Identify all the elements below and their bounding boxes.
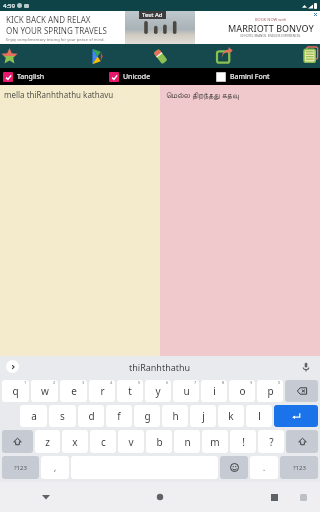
button[interactable]: z	[35, 430, 60, 453]
button[interactable]: n	[174, 430, 200, 453]
staticText: t	[128, 384, 132, 398]
staticText: mella thiRanhthathu kathavu	[4, 89, 114, 100]
button[interactable]: b	[146, 430, 172, 453]
staticText: BOOK NOW with	[255, 17, 287, 22]
button[interactable]: g	[134, 405, 160, 427]
staticText: Tanglish	[17, 72, 45, 82]
button[interactable]: s	[49, 405, 76, 427]
staticText: p	[267, 384, 274, 398]
staticText: ?123	[293, 464, 306, 472]
staticText: d	[88, 409, 95, 423]
button[interactable]: w	[31, 380, 58, 402]
button[interactable]: Clear text	[128, 44, 192, 68]
staticText: 9	[250, 380, 253, 385]
button[interactable]: ?	[258, 430, 284, 453]
button[interactable]: r	[89, 380, 115, 402]
button[interactable]: Advertisement	[0, 11, 320, 44]
button[interactable]: k	[218, 405, 244, 427]
button[interactable]: Comma	[41, 456, 69, 479]
button[interactable]: Open Play Store	[64, 44, 128, 68]
staticText: a	[31, 409, 37, 423]
button[interactable]: o	[229, 380, 255, 402]
staticText: 6	[166, 380, 169, 385]
button[interactable]: Bamini Font	[213, 68, 320, 85]
button[interactable]: Enter	[274, 405, 318, 427]
button[interactable]: i	[201, 380, 227, 402]
staticText: l	[258, 409, 261, 423]
button[interactable]: p	[257, 380, 283, 402]
button[interactable]: Tanglish	[0, 68, 106, 85]
staticText: n	[184, 435, 191, 449]
button[interactable]: Symbols	[2, 456, 39, 479]
staticText: h	[172, 409, 179, 423]
staticText: m	[210, 435, 220, 449]
button[interactable]: u	[173, 380, 199, 402]
staticText: 5	[138, 380, 141, 385]
button[interactable]: q	[2, 380, 29, 402]
staticText: b	[156, 435, 163, 449]
button[interactable]: h	[162, 405, 188, 427]
button[interactable]: Copy	[256, 44, 320, 68]
staticText: Enjoy complimentary testing for your pea…	[6, 37, 105, 42]
button[interactable]: Shift	[286, 430, 318, 453]
button[interactable]: Emoji	[220, 456, 248, 479]
staticText: !	[242, 435, 245, 449]
staticText: 30 HOTEL BRANDS. ENDLESS EXPERIENCES.	[240, 34, 302, 38]
staticText: 4	[110, 380, 113, 385]
staticText: Unicode	[123, 72, 151, 82]
button[interactable]: v	[118, 430, 144, 453]
staticText: u	[183, 384, 190, 398]
button[interactable]: Period	[250, 456, 278, 479]
button[interactable]: Back	[34, 485, 58, 509]
button[interactable]: y	[145, 380, 171, 402]
button[interactable]: Shift	[2, 430, 33, 453]
staticText: g	[144, 409, 151, 423]
staticText: 7	[194, 380, 197, 385]
button[interactable]: l	[246, 405, 272, 427]
staticText: e	[71, 384, 77, 398]
button[interactable]: d	[78, 405, 104, 427]
button[interactable]: Favorite	[0, 44, 64, 68]
button[interactable]: Switch keyboard	[296, 490, 310, 504]
staticText: 3	[82, 380, 85, 385]
staticText: .	[263, 462, 266, 473]
button[interactable]: f	[106, 405, 132, 427]
staticText: ,	[54, 462, 57, 473]
staticText: ?	[269, 435, 274, 449]
staticText: k	[228, 409, 234, 423]
button[interactable]: Voice input	[299, 360, 312, 373]
button[interactable]: c	[90, 430, 116, 453]
staticText: ON YOUR SPRING TRAVELS	[6, 25, 107, 36]
staticText: Test Ad	[142, 11, 163, 19]
staticText: r	[100, 384, 105, 398]
staticText: f	[117, 409, 121, 423]
button[interactable]: t	[117, 380, 143, 402]
button[interactable]: j	[190, 405, 216, 427]
staticText: மெல்ல திறந்தது கதவு	[166, 89, 239, 100]
staticText: Bamini Font	[230, 72, 270, 82]
button[interactable]: Recents	[262, 485, 286, 509]
button[interactable]: e	[60, 380, 87, 402]
button[interactable]: More suggestions	[6, 360, 19, 373]
staticText: y	[155, 384, 161, 398]
button[interactable]: Home	[148, 485, 172, 509]
staticText: 2	[53, 380, 56, 385]
button[interactable]: x	[62, 430, 88, 453]
button[interactable]: Symbols	[280, 456, 318, 479]
button[interactable]: !	[230, 430, 256, 453]
button[interactable]: a	[20, 405, 47, 427]
button[interactable]: Share	[192, 44, 256, 68]
button[interactable]: m	[202, 430, 228, 453]
staticText: v	[128, 435, 134, 449]
staticText: z	[45, 435, 50, 449]
staticText: KICK BACK AND RELAX	[6, 14, 91, 25]
button[interactable]: Backspace	[285, 380, 318, 402]
staticText: w	[41, 384, 49, 398]
staticText: ?123	[14, 464, 27, 472]
staticText: o	[239, 384, 246, 398]
staticText: 1	[24, 380, 27, 385]
staticText: MARRIOTT BONVOY	[228, 22, 314, 34]
button[interactable]: Unicode	[106, 68, 213, 85]
staticText: q	[12, 384, 19, 398]
